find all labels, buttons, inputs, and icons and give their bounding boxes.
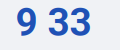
staticText: 9 33 [15, 0, 91, 45]
